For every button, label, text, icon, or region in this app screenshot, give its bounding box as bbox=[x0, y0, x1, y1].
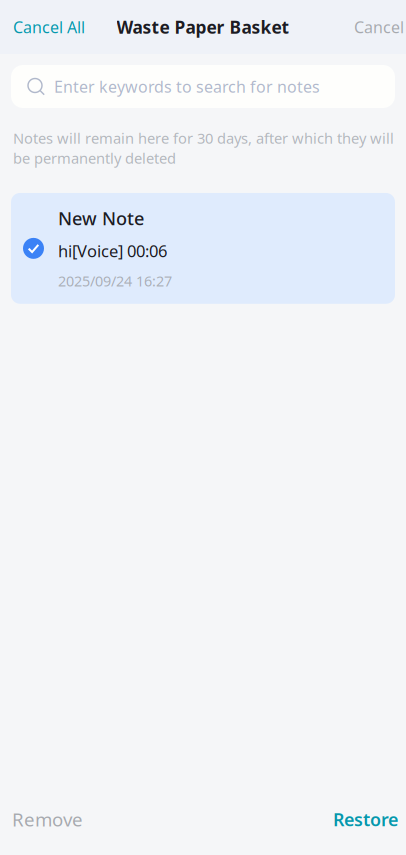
staticText: 2025/09/24 16:27 bbox=[58, 271, 172, 291]
button[interactable]: Restore bbox=[321, 794, 406, 854]
button[interactable]: Enter keywords to search for notes bbox=[11, 65, 395, 108]
staticText: Notes will remain here for 30 days, afte… bbox=[13, 128, 394, 168]
staticText: Restore bbox=[333, 807, 398, 831]
staticText: Cancel bbox=[354, 16, 404, 38]
staticText: Waste Paper Basket bbox=[116, 15, 289, 38]
staticText: hi[Voice] 00:06 bbox=[58, 240, 167, 262]
staticText: Remove bbox=[12, 807, 83, 832]
button[interactable]: New Note bbox=[11, 193, 395, 304]
staticText: New Note bbox=[58, 206, 144, 231]
button[interactable]: Remove bbox=[0, 794, 95, 855]
button[interactable]: Cancel All bbox=[0, 8, 93, 46]
button[interactable]: Cancel bbox=[346, 8, 406, 46]
staticText: Enter keywords to search for notes bbox=[54, 76, 320, 97]
staticText: Cancel All bbox=[13, 16, 85, 38]
